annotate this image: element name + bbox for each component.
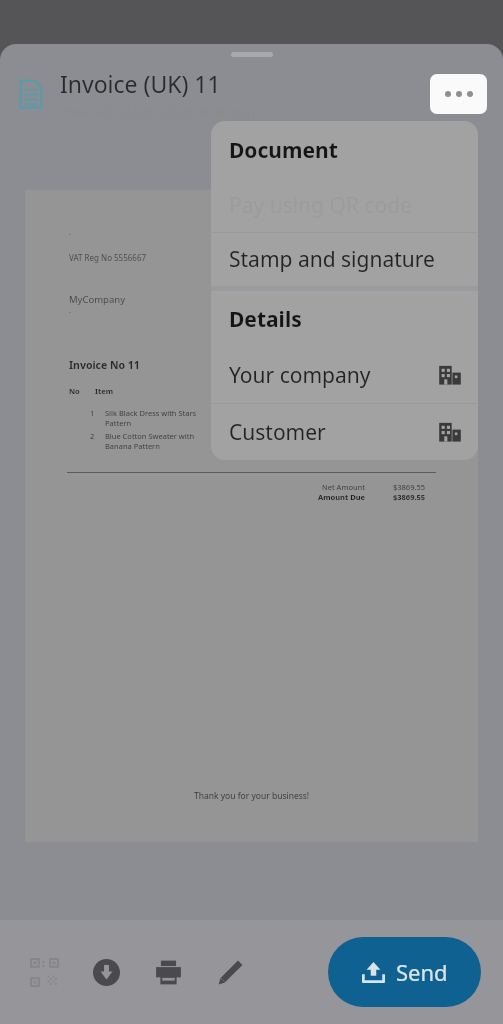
staticText: Invoice (UK) 11 <box>60 68 221 99</box>
button[interactable]: Your company <box>211 347 478 403</box>
button[interactable]: Send <box>328 937 481 1007</box>
button[interactable]: Print <box>146 950 190 994</box>
staticText: 1 <box>90 408 95 418</box>
staticText: Your company <box>229 361 371 390</box>
staticText: Net Amount <box>322 482 365 492</box>
staticText: VAT Reg No 5556667 <box>69 252 147 263</box>
staticText: Silk Black Dress with Stars Pattern <box>105 408 197 428</box>
staticText: Item <box>95 386 225 396</box>
staticText: $3869.55 <box>393 482 426 492</box>
staticText: $3869.55 <box>393 492 426 502</box>
button[interactable]: More options <box>430 74 487 114</box>
staticText: Stamp and signature <box>229 245 435 274</box>
staticText: Document <box>229 136 338 165</box>
staticText: Customer <box>229 418 326 447</box>
button[interactable]: QR code <box>22 950 66 994</box>
button[interactable]: Customer <box>211 404 478 460</box>
staticText: . <box>69 228 71 238</box>
button[interactable]: Stamp and signature <box>211 233 478 286</box>
staticText: No <box>69 386 95 396</box>
staticText: 2 <box>90 431 95 441</box>
staticText: MyCompany <box>69 293 125 306</box>
staticText: Blue Cotton Sweater with Banana Pattern <box>105 431 195 451</box>
staticText: . <box>69 306 71 316</box>
staticText: Details <box>229 305 302 334</box>
staticText: Thank you for your business! <box>194 790 310 802</box>
staticText: Amount Due <box>318 492 365 502</box>
button[interactable]: Download <box>84 950 128 994</box>
button[interactable]: Edit <box>208 950 252 994</box>
staticText: Send <box>396 957 448 987</box>
staticText: Invoice No 11 <box>69 358 140 372</box>
